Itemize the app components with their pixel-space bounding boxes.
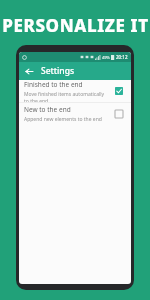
button[interactable]: Unchecked <box>112 107 126 121</box>
staticText: Move finished items automatically to the… <box>24 91 108 102</box>
staticText: Settings <box>41 65 75 77</box>
staticText: 20:12 <box>116 54 128 60</box>
button[interactable]: Finished to the end <box>19 80 131 102</box>
staticText: New to the end <box>24 105 71 114</box>
staticText: PERSONALIZE IT <box>2 14 149 37</box>
button[interactable]: New to the end <box>19 103 131 125</box>
staticText: 49% <box>102 55 110 60</box>
staticText: Append new elements to the end <box>24 116 102 123</box>
button[interactable]: Checked <box>112 84 126 98</box>
button[interactable]: Back <box>23 65 35 77</box>
staticText: Finished to the end <box>24 80 83 89</box>
